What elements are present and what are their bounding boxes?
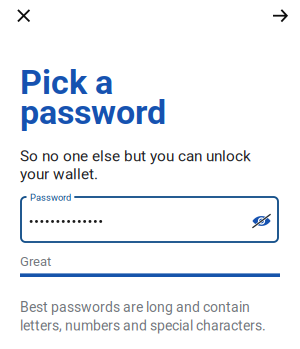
staticText: Great bbox=[20, 254, 51, 269]
button[interactable]: Next bbox=[261, 0, 299, 31]
staticText: So no one else but you can unlock your w… bbox=[20, 147, 251, 183]
staticText: password bbox=[20, 92, 166, 132]
button[interactable]: Close bbox=[5, 0, 43, 31]
staticText: Password bbox=[30, 192, 71, 203]
staticText: Pick a bbox=[20, 62, 113, 102]
button[interactable]: Show password bbox=[244, 204, 278, 238]
staticText: Best passwords are long and contain lett… bbox=[20, 299, 266, 334]
